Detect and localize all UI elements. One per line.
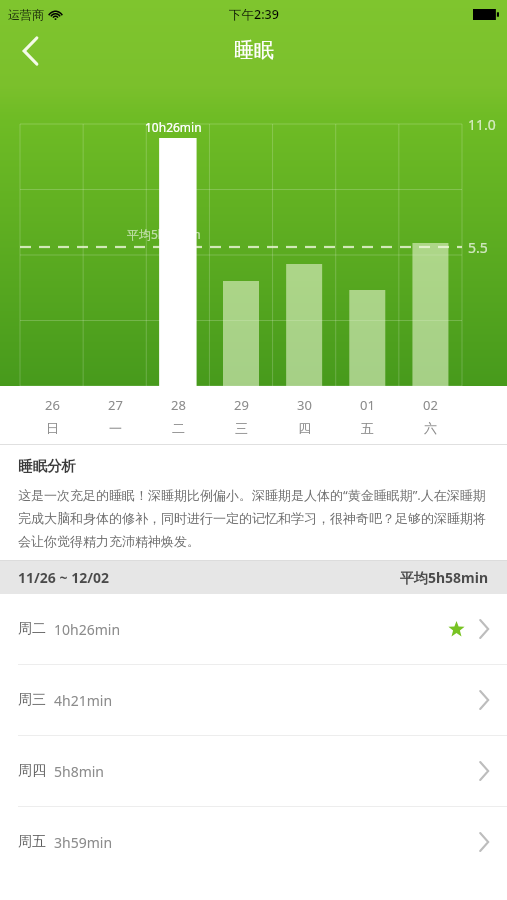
button[interactable]: 周五 — [0, 807, 507, 877]
staticText: 02 — [423, 396, 438, 414]
staticText: 三 — [235, 420, 248, 436]
staticText: 四 — [298, 420, 311, 436]
staticText: 平均5h58min — [127, 226, 201, 242]
button[interactable]: 周四 — [0, 736, 507, 806]
staticText: 平均5h58min — [400, 568, 489, 587]
staticText: 下午2:39 — [229, 6, 279, 23]
staticText: 29 — [234, 396, 249, 414]
staticText: 30 — [297, 396, 312, 414]
staticText: 11.0 — [468, 115, 496, 134]
staticText: 睡眠分析 — [18, 457, 76, 475]
staticText: 周五 — [18, 833, 46, 851]
staticText: 二 — [172, 420, 185, 436]
staticText: 5.5 — [468, 238, 488, 257]
button[interactable]: 周二 — [0, 594, 507, 664]
button[interactable]: Back — [6, 28, 54, 74]
staticText: 六 — [424, 420, 437, 436]
staticText: 11/26 ~ 12/02 — [18, 568, 109, 587]
button[interactable]: 周三 — [0, 665, 507, 735]
staticText: 周三 — [18, 691, 46, 709]
staticText: 01 — [360, 396, 375, 414]
staticText: 4h21min — [54, 691, 113, 710]
staticText: 26 — [45, 396, 60, 414]
staticText: 日 — [46, 420, 59, 436]
staticText: 28 — [171, 396, 186, 414]
staticText: 一 — [109, 420, 122, 436]
staticText: 睡眠 — [234, 38, 274, 63]
staticText: 10h26min — [54, 620, 121, 639]
staticText: 10h26min — [145, 119, 202, 135]
staticText: 27 — [108, 396, 123, 414]
staticText: 运营商 — [8, 7, 44, 22]
staticText: 五 — [361, 420, 374, 436]
staticText: 周四 — [18, 762, 46, 780]
staticText: 这是一次充足的睡眠！深睡期比例偏小。深睡期是人体的“黄金睡眠期”.人在深睡期完成… — [18, 486, 489, 550]
staticText: 周二 — [18, 620, 46, 638]
staticText: 3h59min — [54, 833, 113, 852]
staticText: 5h8min — [54, 762, 105, 781]
